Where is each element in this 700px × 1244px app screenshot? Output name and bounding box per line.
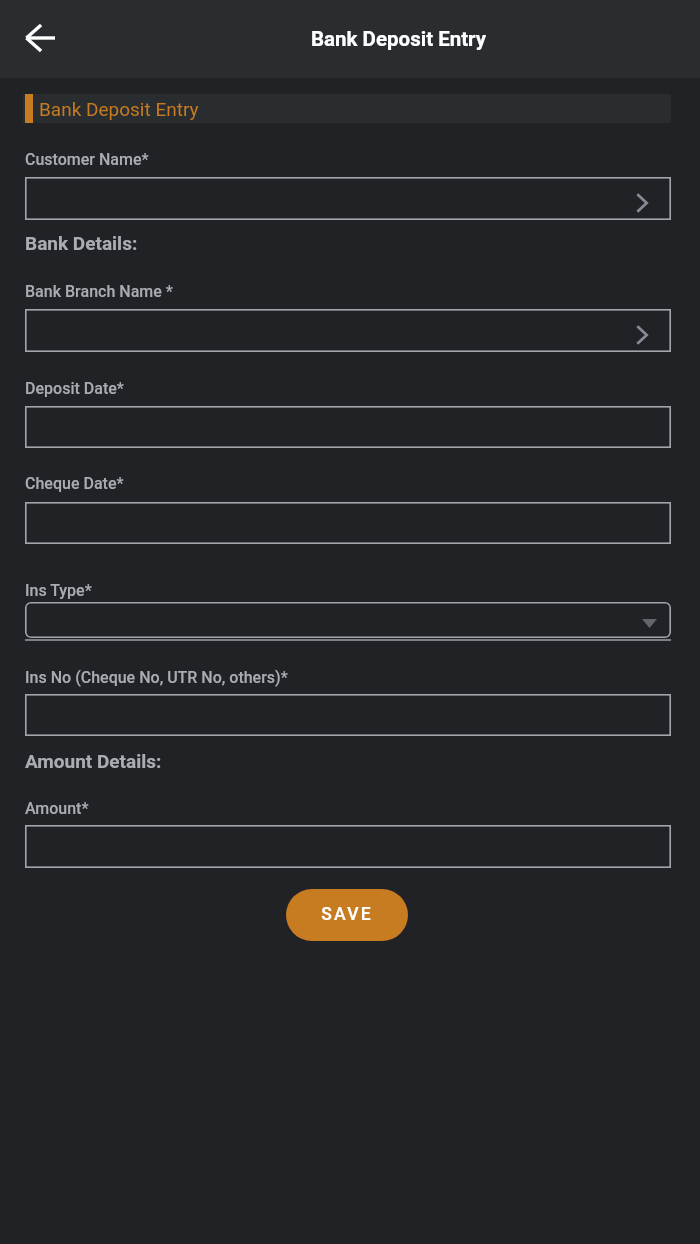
button[interactable]: Back	[12, 10, 68, 66]
staticText: Bank Deposit Entry	[39, 98, 199, 120]
button[interactable]: Customer Name	[25, 177, 671, 220]
button[interactable]: Amount	[25, 825, 671, 868]
staticText: Bank Deposit Entry	[311, 27, 487, 51]
staticText: Ins Type*	[25, 581, 92, 600]
staticText: Cheque Date*	[25, 474, 124, 493]
button[interactable]: Bank Deposit Entry	[23, 94, 671, 123]
button[interactable]: Deposit Date	[25, 406, 671, 448]
button[interactable]: SAVE	[286, 889, 408, 941]
button[interactable]: Ins No	[25, 694, 671, 736]
button[interactable]: Ins Type	[25, 602, 671, 638]
staticText: Bank Details:	[25, 232, 138, 254]
staticText: Customer Name*	[25, 150, 149, 169]
staticText: Amount*	[25, 799, 89, 818]
button[interactable]: Bank Branch Name	[25, 309, 671, 352]
staticText: SAVE	[321, 904, 373, 925]
staticText: Bank Branch Name *	[25, 282, 173, 301]
button[interactable]: Cheque Date	[25, 502, 671, 544]
staticText: Amount Details:	[25, 750, 162, 772]
staticText: Deposit Date*	[25, 379, 124, 398]
staticText: Ins No (Cheque No, UTR No, others)*	[25, 668, 288, 687]
